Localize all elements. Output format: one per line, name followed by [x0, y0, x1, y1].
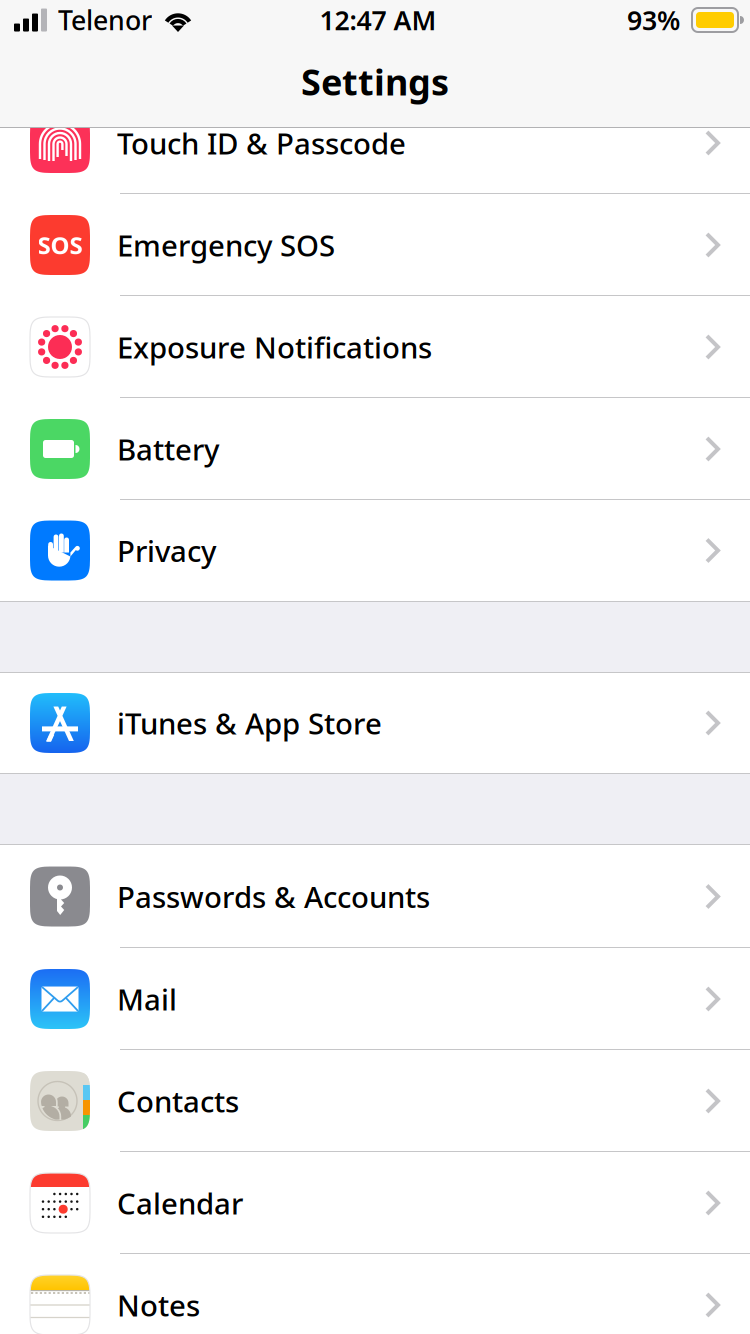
staticText: Mail: [117, 979, 177, 1018]
button[interactable]: Calendar: [0, 1152, 750, 1254]
button[interactable]: Passwords & Accounts: [0, 845, 750, 948]
button[interactable]: SOS: [0, 194, 750, 296]
button[interactable]: Notes: [0, 1254, 750, 1334]
button[interactable]: Touch ID & Passcode: [0, 92, 750, 194]
staticText: 12:47 AM: [319, 2, 436, 38]
staticText: Notes: [117, 1285, 200, 1324]
staticText: Privacy: [117, 531, 216, 570]
staticText: Emergency SOS: [117, 225, 335, 264]
staticText: iTunes & App Store: [117, 703, 382, 742]
button[interactable]: Mail: [0, 948, 750, 1050]
staticText: Battery: [117, 429, 219, 468]
staticText: Passwords & Accounts: [117, 877, 430, 916]
staticText: Settings: [301, 58, 449, 105]
staticText: Exposure Notifications: [117, 327, 432, 366]
button[interactable]: Battery: [0, 398, 750, 500]
staticText: 93%: [627, 2, 680, 38]
staticText: Touch ID & Passcode: [117, 123, 406, 162]
button[interactable]: Privacy: [0, 500, 750, 601]
button[interactable]: Exposure Notifications: [0, 296, 750, 398]
staticText: Telenor: [58, 2, 152, 38]
staticText: Calendar: [117, 1183, 243, 1222]
staticText: Contacts: [117, 1081, 239, 1120]
button[interactable]: Contacts: [0, 1050, 750, 1152]
button[interactable]: iTunes & App Store: [0, 673, 750, 773]
staticText: SOS: [37, 229, 82, 261]
